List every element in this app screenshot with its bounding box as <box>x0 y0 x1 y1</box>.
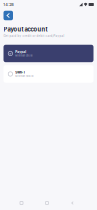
staticText: 14:28 <box>3 2 14 7</box>
staticText: Minimum $100.00 <box>15 75 33 77</box>
staticText: Minimum $10.00 <box>15 54 32 57</box>
button[interactable]: SWIFT <box>0 65 97 83</box>
staticText: Get paid by credit or debit card/Paypal <box>3 34 64 38</box>
button[interactable]: Back <box>60 198 84 208</box>
staticText: Payout account <box>3 26 47 33</box>
staticText: Paypal <box>15 50 26 54</box>
button[interactable]: Paypal <box>0 45 97 62</box>
button[interactable]: Back <box>3 11 13 20</box>
button[interactable]: Recent apps <box>9 198 33 208</box>
staticText: SWIFT <box>15 70 25 74</box>
button[interactable]: Home <box>35 198 59 208</box>
